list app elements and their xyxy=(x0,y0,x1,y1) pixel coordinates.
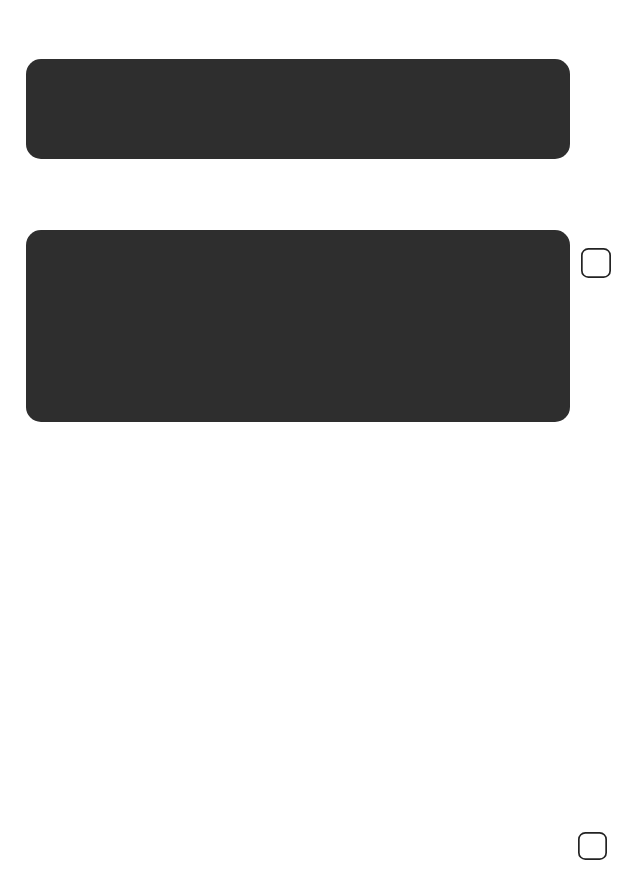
button[interactable]: Header card xyxy=(26,59,570,159)
button[interactable]: Add xyxy=(578,832,607,860)
button[interactable]: More options xyxy=(581,248,611,278)
button[interactable]: Content card xyxy=(26,230,570,422)
